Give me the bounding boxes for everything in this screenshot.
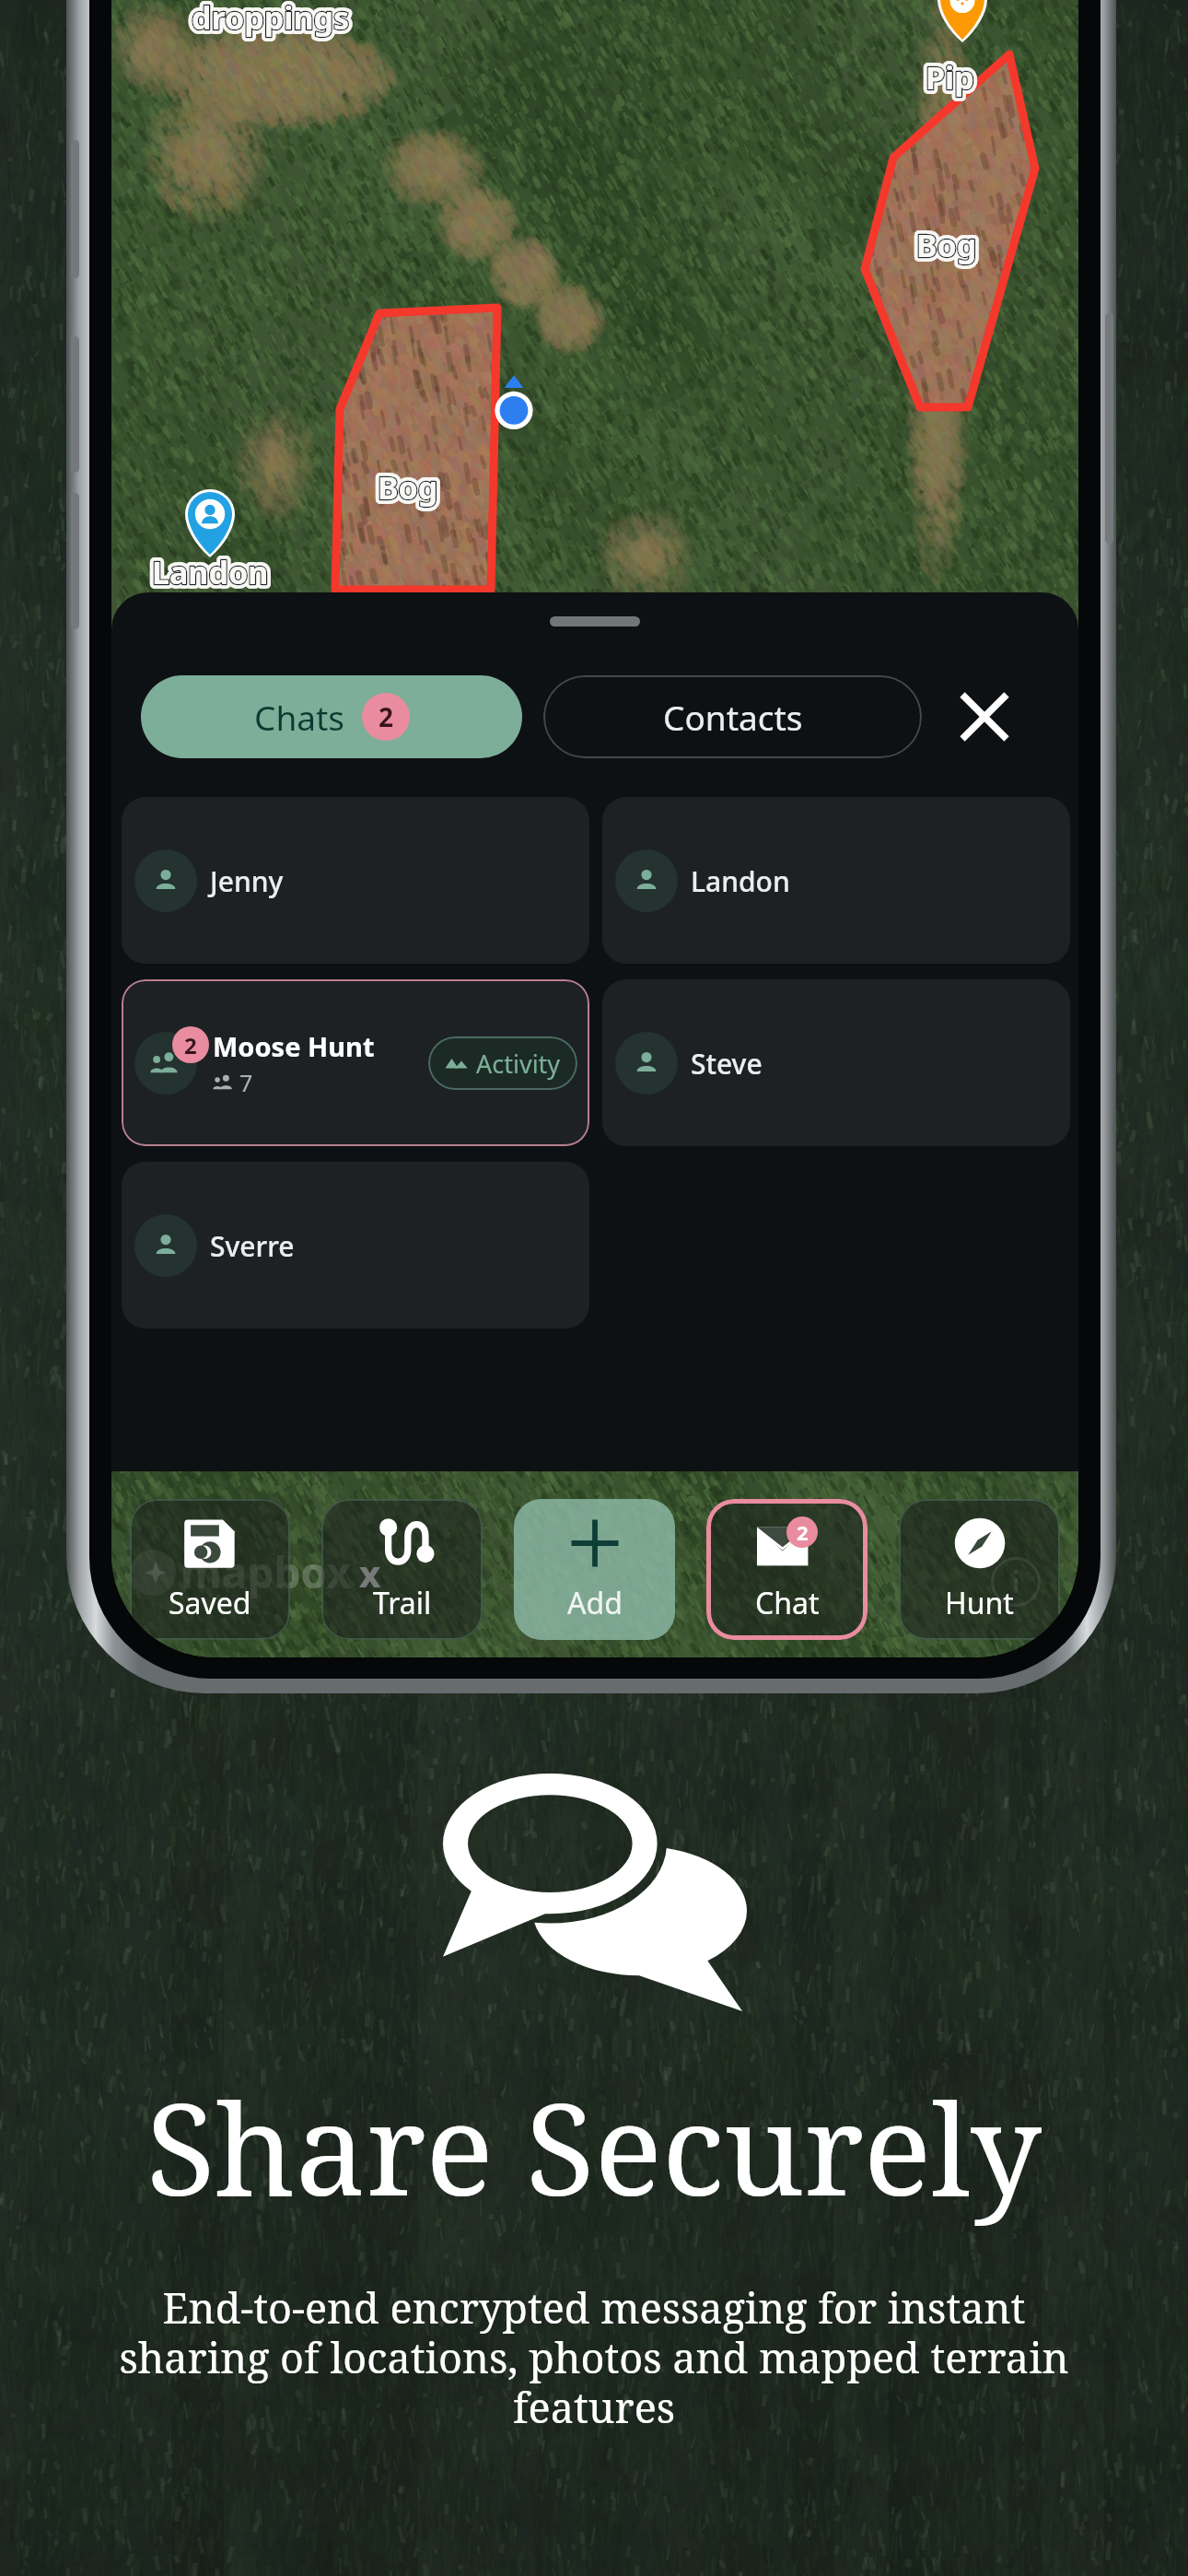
staticText: Bog: [378, 466, 438, 509]
staticText: Trail: [373, 1583, 432, 1623]
staticText: Chats: [254, 694, 345, 740]
staticText: Bog: [378, 466, 438, 509]
staticText: Share Securely: [0, 2061, 1188, 2233]
staticText: Bog: [916, 224, 977, 266]
staticText: mapbox: [181, 1543, 351, 1601]
staticText: droppings: [192, 0, 350, 39]
button[interactable]: Sverre: [122, 1162, 589, 1329]
button[interactable]: Add: [514, 1499, 675, 1640]
staticText: Add: [567, 1583, 623, 1623]
button[interactable]: Trail: [321, 1499, 483, 1640]
staticText: Moose Hunt: [213, 1028, 375, 1064]
button[interactable]: Landon: [602, 797, 1070, 964]
button[interactable]: Close: [949, 682, 1019, 752]
staticText: Landon: [152, 551, 269, 593]
staticText: Activity: [476, 1047, 561, 1081]
staticText: 2: [797, 1518, 809, 1546]
staticText: Chat: [755, 1583, 820, 1623]
button[interactable]: Jenny: [122, 797, 589, 964]
staticText: Bog: [378, 466, 438, 509]
button[interactable]: Saved: [130, 1499, 290, 1640]
staticText: Pip: [926, 56, 974, 99]
staticText: Landon: [152, 551, 269, 593]
staticText: Saved: [169, 1583, 251, 1623]
button[interactable]: Activity: [445, 1036, 561, 1090]
staticText: 2: [184, 1030, 197, 1060]
staticText: Contacts: [663, 694, 803, 740]
button[interactable]: 2: [122, 979, 589, 1146]
staticText: Pip: [926, 56, 974, 99]
button[interactable]: Steve: [602, 979, 1070, 1146]
staticText: Bog: [916, 224, 977, 266]
staticText: Steve: [691, 1045, 763, 1083]
button[interactable]: Hunt: [899, 1499, 1060, 1640]
staticText: 2: [379, 699, 394, 734]
staticText: x: [359, 1548, 381, 1598]
staticText: End-to-end encrypted messaging for insta…: [0, 2279, 1188, 2436]
staticText: Sverre: [210, 1227, 295, 1265]
staticText: Landon: [152, 551, 269, 593]
staticText: Landon: [691, 862, 790, 900]
button[interactable]: Chats: [141, 675, 522, 758]
staticText: Hunt: [945, 1583, 1014, 1623]
staticText: Pip: [926, 56, 974, 99]
button[interactable]: 2: [706, 1499, 868, 1640]
button[interactable]: Contacts: [543, 675, 922, 758]
staticText: 7: [239, 1067, 253, 1098]
staticText: Jenny: [210, 862, 284, 900]
staticText: droppings: [192, 0, 350, 39]
staticText: droppings: [192, 0, 350, 39]
staticText: Bog: [916, 224, 977, 266]
